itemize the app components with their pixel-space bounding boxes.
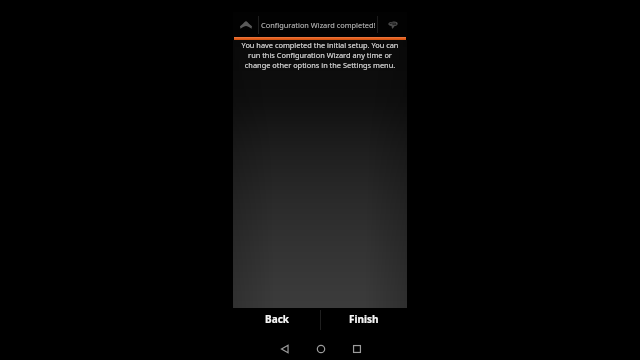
- button[interactable]: Back: [274, 338, 295, 359]
- button[interactable]: Navigate up: [233, 12, 258, 37]
- button[interactable]: Finish: [320, 308, 407, 334]
- button[interactable]: Tips: [378, 12, 407, 37]
- staticText: change other options in the Settings men…: [233, 60, 407, 70]
- button[interactable]: Recents: [346, 338, 367, 359]
- button[interactable]: Home: [310, 338, 331, 359]
- staticText: Configuration Wizard completed!: [261, 20, 376, 30]
- button[interactable]: Back: [233, 308, 320, 334]
- staticText: Finish: [349, 312, 379, 326]
- staticText: You have completed the initial setup. Yo…: [233, 40, 407, 50]
- staticText: Back: [265, 312, 289, 326]
- staticText: run this Configuration Wizard any time o…: [233, 50, 407, 60]
